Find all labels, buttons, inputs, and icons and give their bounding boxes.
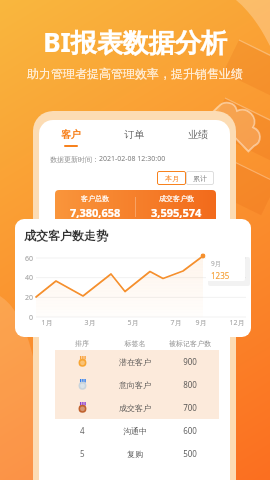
staticText: 成交客户数走势 [24,228,108,243]
staticText: 20 [15,293,33,303]
staticText: 800 [161,379,219,390]
staticText: 3月 [79,318,101,328]
staticText: 数据更新时间： [50,155,99,164]
other: rank 2 medal [77,379,88,390]
staticText: 5月 [122,318,144,328]
button[interactable]: 5 [55,442,219,465]
staticText: 助力管理者提高管理效率，提升销售业绩 [0,66,270,81]
staticText: 600 [161,425,219,436]
staticText: 意向客户 [109,380,161,390]
button[interactable]: rank 3 medal [55,396,219,419]
button[interactable]: 订单 [102,128,166,145]
staticText: 7月 [165,318,187,328]
staticText: 9月 [190,318,212,328]
staticText: 1235 [211,270,230,281]
staticText: 500 [161,448,219,459]
button[interactable]: 4 [55,419,219,442]
other: rank 1 medal [77,356,88,367]
staticText: 复购 [109,449,161,459]
staticText: BI报表数据分析 [0,24,270,60]
staticText: 4 [80,425,85,436]
staticText: 客户总数 [81,194,109,203]
staticText: 成交客户 [109,403,161,413]
staticText: 0 [15,313,33,323]
staticText: 2021-02-08 12:30:00 [99,154,166,164]
staticText: 7,380,658 [70,205,121,220]
staticText: 40 [15,273,33,283]
button[interactable]: 累计 [186,171,214,185]
button[interactable]: 业绩 [166,128,230,145]
button[interactable]: rank 1 medal [55,350,219,373]
staticText: 9月 [211,259,222,268]
staticText: 本月 [165,174,179,183]
staticText: 业绩 [188,128,208,141]
other: rank 3 medal [77,402,88,413]
staticText: 900 [161,356,219,367]
staticText: 1月 [36,318,58,328]
staticText: 3,595,574 [151,205,202,220]
button[interactable]: 本月 [157,171,186,185]
staticText: 累计 [193,174,207,183]
staticText: 订单 [124,128,144,141]
staticText: 成交客户数 [159,194,194,203]
staticText: 标签名 [109,339,161,348]
staticText: 被标记客户数 [161,339,219,348]
staticText: 客户 [61,128,81,141]
staticText: 潜在客户 [109,357,161,367]
staticText: 700 [161,402,219,413]
staticText: 60 [15,254,33,264]
staticText: 5 [80,448,85,459]
staticText: 12月 [226,318,248,328]
button[interactable]: 客户 [39,128,102,147]
staticText: 排序 [55,339,109,348]
staticText: 沟通中 [109,426,161,436]
button[interactable]: rank 2 medal [55,373,219,396]
